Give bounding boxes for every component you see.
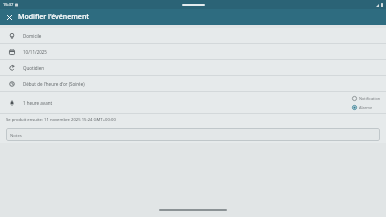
staticText: Notification (359, 96, 381, 101)
staticText: Quotidien (23, 65, 45, 71)
staticText: Notes (10, 132, 22, 138)
staticText: Domicile (23, 33, 42, 39)
staticText: Se produit ensuite: 11 novembre 2025 15:… (6, 117, 116, 123)
button[interactable]: Heure (0, 76, 386, 91)
staticText: 15:37 (3, 2, 14, 7)
button[interactable]: Fermer (3, 11, 15, 23)
button[interactable]: Rappel (0, 92, 352, 113)
button[interactable]: Alarme (352, 105, 373, 110)
staticText: 1 heure avant (23, 100, 53, 106)
staticText: Début de l'heure d'or (Soirée) (23, 81, 85, 87)
button[interactable]: Notification (352, 96, 381, 101)
staticText: Alarme (359, 105, 373, 110)
button[interactable]: Lieu (0, 28, 386, 43)
button[interactable]: Notes (6, 128, 380, 141)
button[interactable]: Date (0, 44, 386, 59)
staticText: 10/11/2025 (23, 49, 47, 55)
button[interactable]: Répétition (0, 60, 386, 75)
staticText: Modifier l'événement (18, 12, 89, 22)
